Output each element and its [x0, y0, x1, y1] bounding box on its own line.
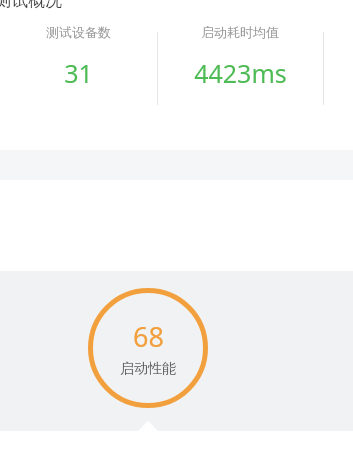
staticText: 启动性能 [120, 360, 176, 378]
staticText: 31 [64, 56, 93, 90]
staticText: 测试设备数 [46, 24, 111, 40]
button[interactable]: 启动性能 68 [88, 288, 208, 408]
button[interactable]: 测试设备数 [18, 24, 138, 90]
staticText: 68 [133, 318, 164, 355]
staticText: 4423ms [194, 56, 287, 90]
staticText: 启动耗时均值 [201, 24, 279, 40]
staticText: 测试概况 [0, 0, 62, 11]
button[interactable]: 启动耗时均值 [180, 24, 300, 90]
